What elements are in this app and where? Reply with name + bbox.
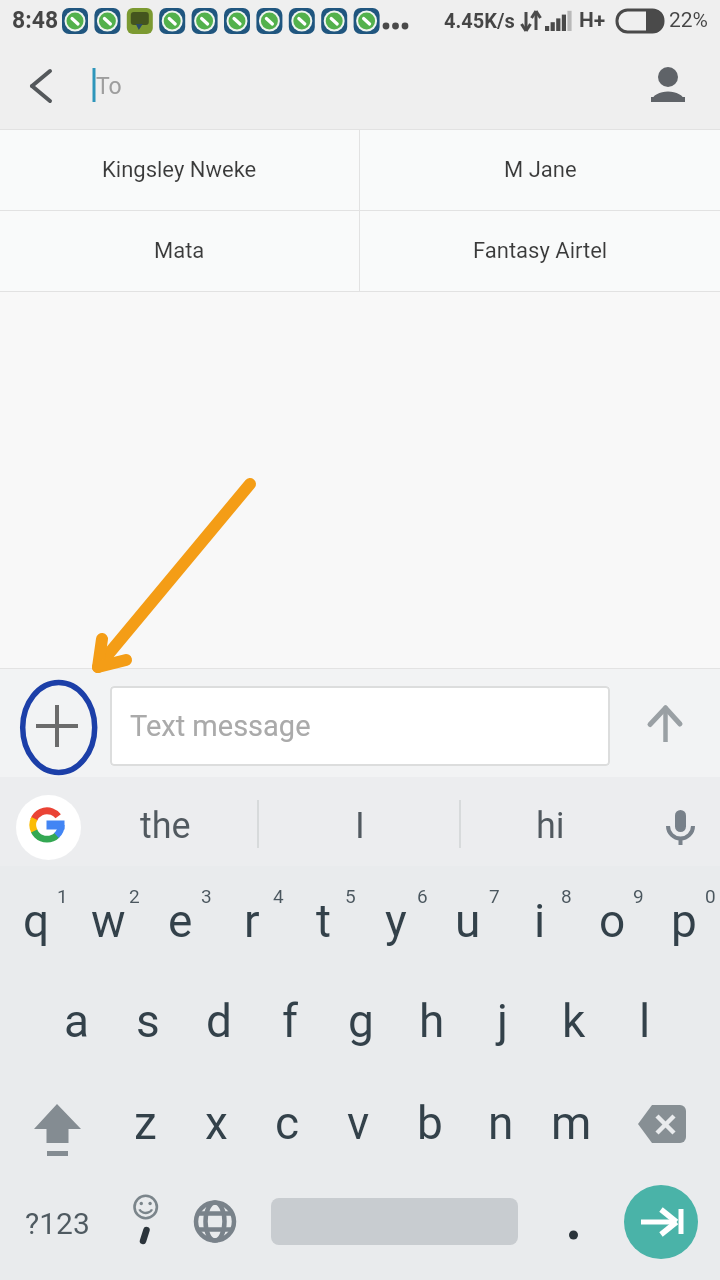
staticText: Text message xyxy=(130,709,311,743)
staticText: 4.45K/s xyxy=(444,9,515,32)
staticText: Mata xyxy=(154,238,205,264)
staticText: z xyxy=(134,1096,157,1150)
button[interactable]: h xyxy=(396,974,467,1068)
staticText: Kingsley Nweke xyxy=(102,157,257,183)
button[interactable]: M Jane xyxy=(360,130,720,210)
staticText: 22% xyxy=(669,8,708,33)
button[interactable]: x xyxy=(181,1076,252,1170)
staticText: j xyxy=(497,994,509,1048)
staticText: 9 xyxy=(633,885,644,907)
button[interactable] xyxy=(110,1176,181,1270)
button[interactable] xyxy=(652,795,710,853)
button[interactable] xyxy=(624,1185,698,1259)
button[interactable] xyxy=(20,62,68,110)
staticText: 4 xyxy=(273,885,284,907)
staticText: 8:48 xyxy=(12,7,59,34)
staticText: o xyxy=(599,894,626,948)
staticText: h xyxy=(419,994,445,1048)
button[interactable] xyxy=(16,795,81,860)
staticText: q xyxy=(23,894,50,948)
staticText: hi xyxy=(536,805,565,847)
button[interactable]: y xyxy=(360,874,432,968)
button[interactable]: k xyxy=(538,974,609,1068)
button[interactable]: j xyxy=(467,974,538,1068)
button[interactable]: the xyxy=(95,797,235,855)
staticText: M Jane xyxy=(504,157,577,183)
button[interactable]: g xyxy=(325,974,396,1068)
button[interactable]: d xyxy=(183,974,254,1068)
staticText: To xyxy=(96,73,122,100)
staticText: y xyxy=(385,894,407,948)
button[interactable]: I xyxy=(310,797,410,855)
button[interactable]: o xyxy=(576,874,648,968)
button[interactable]: z xyxy=(110,1076,181,1170)
button[interactable]: Text message xyxy=(110,686,610,766)
button[interactable]: t xyxy=(288,874,360,968)
button[interactable] xyxy=(25,694,89,758)
staticText: u xyxy=(455,894,481,948)
button[interactable]: a xyxy=(41,974,112,1068)
button[interactable]: f xyxy=(254,974,325,1068)
staticText: w xyxy=(91,894,126,948)
button[interactable] xyxy=(271,1176,518,1270)
button[interactable]: c xyxy=(252,1076,323,1170)
button[interactable] xyxy=(637,694,695,754)
staticText: s xyxy=(136,994,160,1048)
staticText: 3 xyxy=(201,885,212,907)
button[interactable] xyxy=(80,58,625,113)
staticText: 1 xyxy=(57,885,68,907)
button[interactable]: q xyxy=(0,874,72,968)
button[interactable] xyxy=(645,57,700,112)
button[interactable] xyxy=(182,1176,253,1270)
staticText: H+ xyxy=(579,8,606,33)
staticText: n xyxy=(488,1096,514,1150)
button[interactable]: Mata xyxy=(0,211,359,291)
staticText: 8 xyxy=(561,885,572,907)
button[interactable]: u xyxy=(432,874,504,968)
staticText: I xyxy=(355,805,365,847)
button[interactable]: Fantasy Airtel xyxy=(360,211,720,291)
button[interactable]: w xyxy=(72,874,144,968)
button[interactable] xyxy=(538,1176,609,1270)
button[interactable]: l xyxy=(609,974,680,1068)
staticText: e xyxy=(168,894,193,948)
staticText: r xyxy=(244,894,260,948)
staticText: b xyxy=(417,1096,443,1150)
staticText: v xyxy=(347,1096,370,1150)
staticText: g xyxy=(348,994,374,1048)
staticText: 2 xyxy=(129,885,140,907)
staticText: f xyxy=(282,994,298,1048)
staticText: l xyxy=(639,994,651,1048)
staticText: ?123 xyxy=(25,1206,90,1241)
staticText: the xyxy=(140,805,191,847)
button[interactable]: s xyxy=(112,974,183,1068)
button[interactable]: i xyxy=(504,874,576,968)
staticText: k xyxy=(562,994,586,1048)
staticText: i xyxy=(534,894,546,948)
staticText: m xyxy=(551,1096,592,1150)
button[interactable]: r xyxy=(216,874,288,968)
button[interactable]: hi xyxy=(500,797,600,855)
staticText: p xyxy=(671,894,697,948)
staticText: Fantasy Airtel xyxy=(473,238,608,264)
button[interactable]: ?123 xyxy=(10,1176,105,1270)
staticText: 6 xyxy=(417,885,428,907)
button[interactable]: n xyxy=(465,1076,536,1170)
button[interactable]: e xyxy=(144,874,216,968)
staticText: c xyxy=(275,1096,300,1150)
staticText: 0 xyxy=(705,885,716,907)
staticText: t xyxy=(316,894,332,948)
staticText: 5 xyxy=(345,885,356,907)
staticText: 7 xyxy=(489,885,500,907)
button[interactable] xyxy=(613,1076,710,1170)
button[interactable]: v xyxy=(323,1076,394,1170)
staticText: a xyxy=(64,994,90,1048)
button[interactable]: p xyxy=(648,874,720,968)
button[interactable]: b xyxy=(394,1076,465,1170)
button[interactable]: m xyxy=(536,1076,607,1170)
button[interactable]: Kingsley Nweke xyxy=(0,130,359,210)
staticText: d xyxy=(206,994,232,1048)
staticText: x xyxy=(205,1096,228,1150)
button[interactable] xyxy=(10,1076,105,1170)
